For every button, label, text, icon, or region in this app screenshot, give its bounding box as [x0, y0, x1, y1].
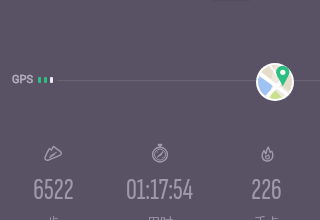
- button[interactable]: 6522: [0, 138, 106, 220]
- staticText: 步: [47, 214, 60, 220]
- staticText: GPS: [12, 73, 33, 86]
- button[interactable]: 226: [213, 138, 320, 220]
- button[interactable]: Open map: [256, 63, 294, 101]
- staticText: 千卡: [254, 214, 280, 220]
- staticText: 6522: [33, 172, 74, 208]
- staticText: 226: [251, 172, 282, 208]
- button[interactable]: 01:17:54: [106, 138, 213, 220]
- staticText: 用时: [147, 214, 173, 220]
- staticText: 01:17:54: [126, 172, 193, 208]
